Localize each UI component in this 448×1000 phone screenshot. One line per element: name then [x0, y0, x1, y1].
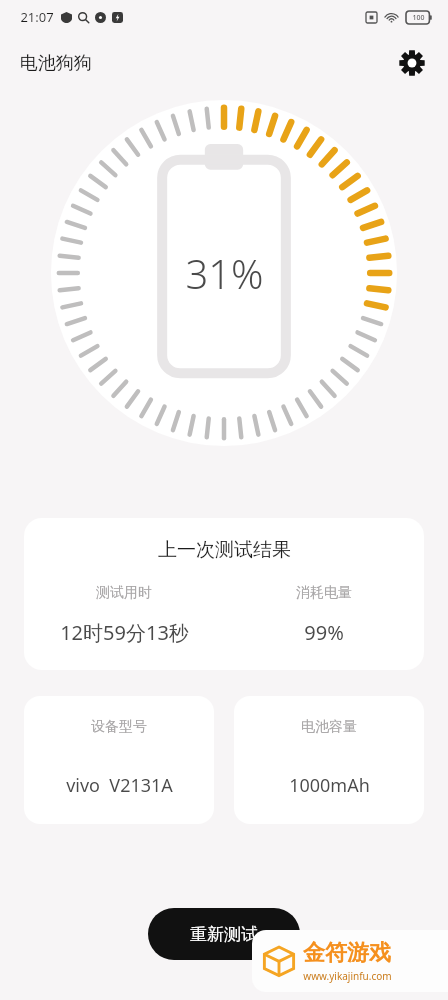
staticText: 电池狗狗: [20, 52, 92, 75]
staticText: 测试用时: [96, 584, 152, 602]
button[interactable]: Settings: [392, 43, 432, 83]
button[interactable]: 重新测试: [148, 908, 300, 960]
staticText: 消耗电量: [296, 584, 352, 602]
staticText: 12时59分13秒: [60, 619, 189, 646]
button[interactable]: 电池容量: [234, 696, 424, 824]
button[interactable]: 上一次测试结果: [24, 518, 424, 670]
staticText: 31%: [185, 246, 264, 300]
staticText: 99%: [304, 619, 344, 646]
staticText: 金符游戏: [303, 939, 391, 967]
staticText: 1000mAh: [289, 773, 370, 798]
staticText: 电池容量: [301, 718, 357, 736]
staticText: 设备型号: [91, 718, 147, 736]
staticText: 100: [412, 13, 425, 23]
staticText: 21:07: [20, 8, 54, 26]
staticText: www.yikajinfu.com: [303, 969, 392, 983]
staticText: vivo V2131A: [66, 773, 173, 798]
button[interactable]: 设备型号: [24, 696, 214, 824]
staticText: 上一次测试结果: [158, 538, 291, 562]
staticText: 重新测试: [190, 924, 258, 945]
